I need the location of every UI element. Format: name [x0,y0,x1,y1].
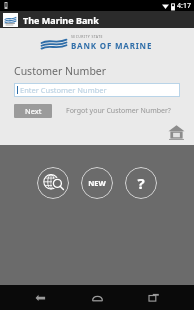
button[interactable]: Home [80,285,114,310]
staticText: Customer Number [14,64,107,78]
staticText: NEW [88,178,106,188]
button[interactable]: Forgot your Customer Number? [66,106,171,116]
button[interactable]: Recent apps [137,285,171,310]
button[interactable]: Back [23,285,57,310]
button[interactable]: Help [125,167,157,199]
button[interactable]: Enter Customer Number [14,83,180,97]
staticText: ? [137,173,145,193]
staticText: SECURITY STATE [71,34,103,39]
button[interactable]: Find a location [37,167,69,199]
staticText: Enter Customer Number [20,85,107,95]
staticText: The Marine Bank [23,14,99,26]
button[interactable]: Next [14,104,52,118]
button[interactable]: New user enrollment [81,167,113,199]
staticText: Forgot your Customer Number? [66,106,171,116]
staticText: 4:17 [177,1,191,11]
staticText: Next [25,106,42,116]
staticText: BANK OF MARINE [71,40,153,51]
